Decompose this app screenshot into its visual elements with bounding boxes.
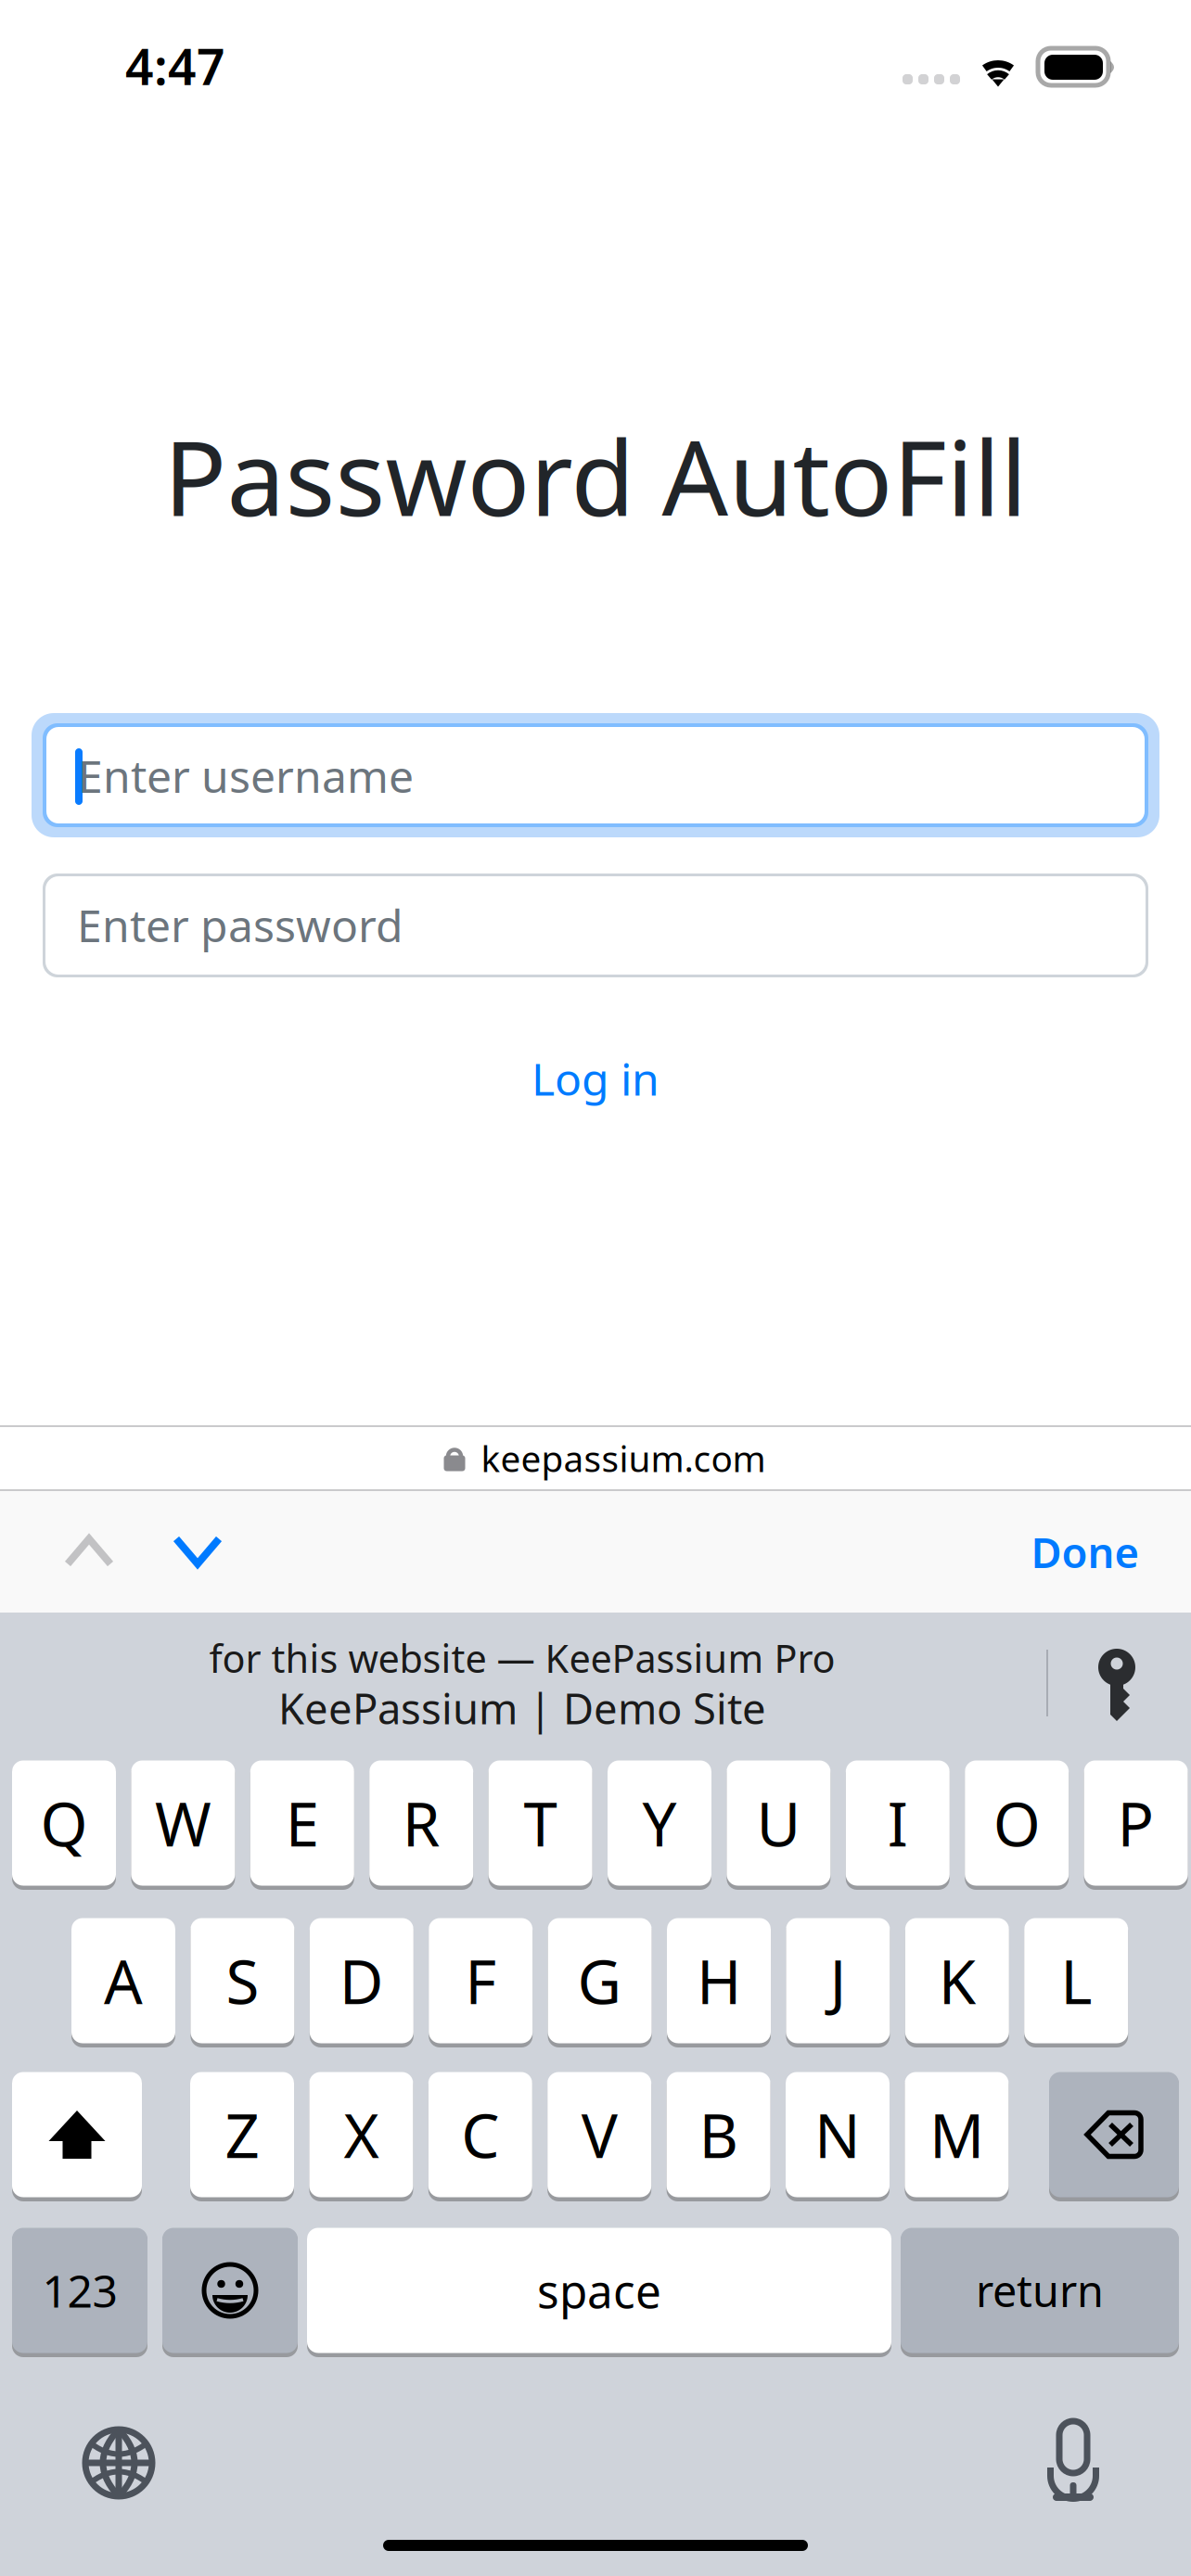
staticText: L — [1060, 1940, 1092, 2021]
button[interactable]: Y — [608, 1760, 711, 1889]
button[interactable]: R — [369, 1760, 473, 1889]
button[interactable]: B — [667, 2072, 770, 2200]
button[interactable]: W — [131, 1760, 235, 1889]
staticText: V — [581, 2094, 617, 2175]
button[interactable]: KeePassium AutoFill — [1072, 1635, 1161, 1737]
staticText: 123 — [42, 2261, 117, 2320]
button[interactable]: 123 — [12, 2227, 147, 2356]
button[interactable]: C — [428, 2072, 532, 2200]
button[interactable]: I — [846, 1760, 950, 1889]
staticText: F — [465, 1940, 496, 2021]
staticText: Y — [642, 1783, 677, 1863]
button[interactable]: Q — [12, 1760, 116, 1889]
button[interactable]: P — [1084, 1760, 1188, 1889]
button[interactable]: E — [250, 1760, 354, 1889]
button[interactable]: U — [727, 1760, 831, 1889]
staticText: C — [461, 2094, 499, 2175]
button[interactable]: V — [547, 2072, 651, 2200]
staticText: 4:47 — [125, 33, 225, 99]
staticText: P — [1117, 1783, 1154, 1863]
staticText: O — [993, 1783, 1040, 1863]
staticText: J — [830, 1940, 846, 2021]
button[interactable]: S — [191, 1918, 294, 2047]
staticText: I — [887, 1783, 908, 1863]
button[interactable]: Emoji — [162, 2227, 298, 2356]
staticText: H — [697, 1940, 741, 2021]
button[interactable]: K — [905, 1918, 1009, 2047]
staticText: U — [756, 1783, 801, 1863]
staticText: Q — [40, 1783, 88, 1863]
staticText: G — [578, 1940, 622, 2021]
button[interactable]: Shift — [12, 2072, 142, 2200]
button[interactable]: space — [307, 2227, 891, 2356]
button[interactable]: O — [965, 1760, 1069, 1889]
staticText: K — [939, 1940, 976, 2021]
staticText: space — [537, 2260, 661, 2321]
button[interactable]: Z — [190, 2072, 294, 2200]
button[interactable]: Done — [1006, 1491, 1164, 1613]
staticText: KeePassium | Demo Site — [278, 1680, 766, 1736]
button[interactable]: H — [667, 1918, 771, 2047]
button[interactable]: A — [71, 1918, 175, 2047]
button[interactable]: T — [488, 1760, 592, 1889]
staticText: keepassium.com — [481, 1434, 766, 1482]
button[interactable]: F — [429, 1918, 533, 2047]
staticText: R — [402, 1783, 440, 1863]
staticText: Password AutoFill — [164, 407, 1027, 545]
button[interactable]: Log in — [475, 1039, 716, 1117]
staticText: Enter username — [78, 746, 414, 805]
staticText: for this website — KeePassium Pro — [209, 1633, 835, 1683]
button[interactable]: M — [905, 2072, 1009, 2200]
button[interactable]: Previous field — [37, 1491, 141, 1613]
button[interactable]: Dictation — [1018, 2405, 1129, 2517]
staticText: Log in — [531, 1049, 660, 1108]
button[interactable]: J — [786, 1918, 890, 2047]
staticText: S — [226, 1940, 259, 2021]
button[interactable]: G — [548, 1918, 652, 2047]
staticText: E — [286, 1783, 319, 1863]
staticText: M — [929, 2094, 984, 2175]
staticText: Z — [225, 2094, 259, 2175]
button[interactable]: keepassium.com — [364, 1425, 846, 1491]
button[interactable]: return — [901, 2227, 1179, 2356]
staticText: W — [155, 1783, 211, 1863]
staticText: N — [814, 2094, 861, 2175]
button[interactable]: Next keyboard — [63, 2407, 174, 2519]
button[interactable]: Next field — [146, 1491, 250, 1613]
button[interactable]: N — [786, 2072, 890, 2200]
staticText: return — [976, 2262, 1104, 2319]
staticText: D — [339, 1940, 384, 2021]
staticText: A — [104, 1940, 143, 2021]
button[interactable]: D — [310, 1918, 414, 2047]
button[interactable]: L — [1024, 1918, 1128, 2047]
staticText: X — [344, 2094, 379, 2175]
button[interactable]: for this website — KeePassium Pro — [12, 1614, 1032, 1753]
button[interactable]: X — [309, 2072, 413, 2200]
staticText: Enter password — [77, 895, 403, 954]
staticText: T — [524, 1783, 557, 1863]
staticText: B — [699, 2094, 738, 2175]
staticText: Done — [1031, 1524, 1140, 1580]
button[interactable]: Delete — [1049, 2072, 1179, 2200]
